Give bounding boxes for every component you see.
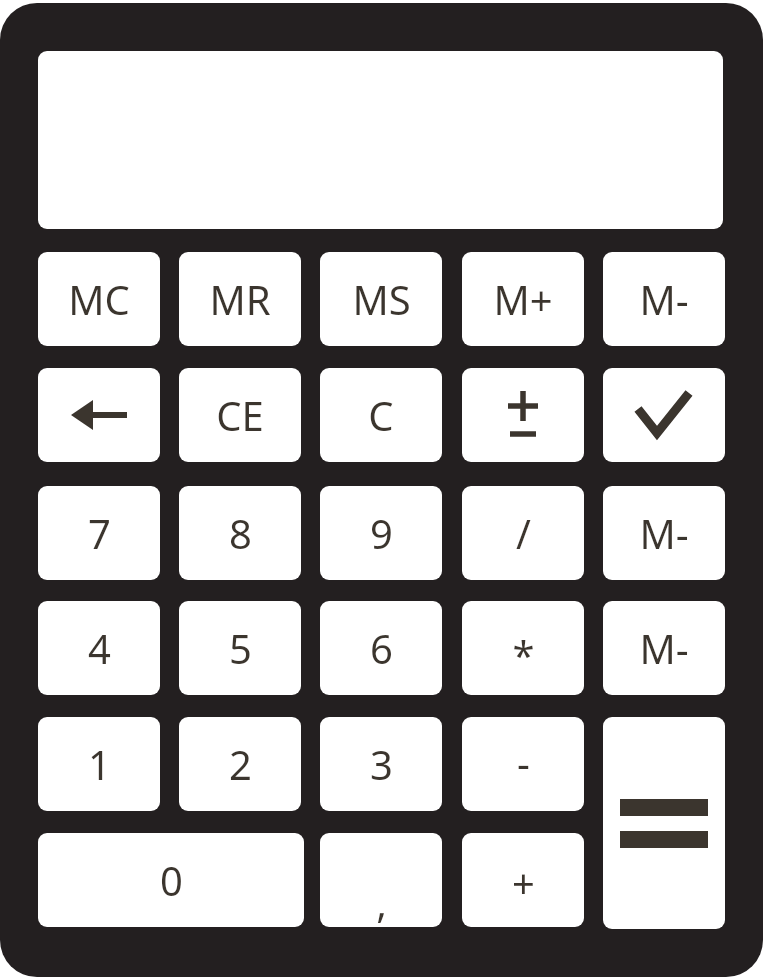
staticText: , [376,875,387,927]
button[interactable]: 7 [38,486,160,580]
button[interactable]: CE [179,368,301,462]
staticText: 7 [88,506,111,560]
staticText: 3 [370,737,393,791]
button[interactable]: / [462,486,584,580]
staticText: 9 [370,506,393,560]
button[interactable]: C [320,368,442,462]
staticText: M+ [493,272,553,326]
button[interactable]: * [462,601,584,695]
staticText: CE [216,388,264,442]
button[interactable]: M- [603,601,725,695]
staticText: M- [639,506,689,560]
button[interactable]: , [320,833,442,927]
button[interactable]: M- [603,252,725,346]
staticText: 0 [160,853,183,907]
button[interactable]: Enter [603,368,725,462]
button[interactable]: 9 [320,486,442,580]
button[interactable]: - [462,717,584,811]
button[interactable]: MS [320,252,442,346]
button[interactable]: Backspace [38,368,160,462]
button[interactable]: MR [179,252,301,346]
staticText: / [516,506,531,560]
staticText: - [517,735,530,789]
button[interactable]: M- [603,486,725,580]
staticText: C [368,388,394,442]
button[interactable]: 8 [179,486,301,580]
staticText: 5 [229,621,252,675]
button[interactable]: 5 [179,601,301,695]
staticText: MS [352,272,411,326]
staticText: 1 [88,737,111,791]
staticText: M- [639,621,689,675]
staticText: * [512,627,535,681]
button[interactable] [38,51,723,229]
button[interactable]: 4 [38,601,160,695]
staticText: M- [639,272,689,326]
staticText: 4 [88,621,111,675]
staticText: MR [209,272,271,326]
button[interactable]: 6 [320,601,442,695]
button[interactable]: 1 [38,717,160,811]
button[interactable]: MC [38,252,160,346]
button[interactable]: 2 [179,717,301,811]
button[interactable]: Plus minus [462,368,584,462]
button[interactable]: 0 [38,833,304,927]
button[interactable]: 3 [320,717,442,811]
staticText: 8 [229,506,252,560]
staticText: 6 [370,621,393,675]
button[interactable]: Equals [603,717,725,929]
button[interactable]: M+ [462,252,584,346]
staticText: MC [68,272,130,326]
staticText: + [512,855,535,909]
staticText: 2 [229,737,252,791]
button[interactable]: + [462,833,584,927]
